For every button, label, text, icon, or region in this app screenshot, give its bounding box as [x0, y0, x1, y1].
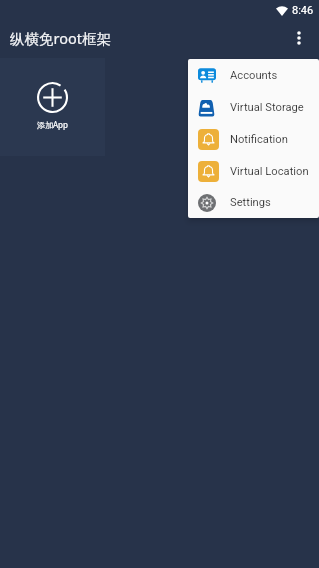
button[interactable]: Settings — [188, 187, 319, 218]
button[interactable]: Virtual Storage — [188, 91, 319, 123]
button[interactable]: More options — [279, 18, 319, 58]
staticText: 添加App — [37, 119, 68, 130]
button[interactable]: 添加App — [0, 58, 105, 156]
staticText: 8:46 — [292, 4, 314, 17]
staticText: Virtual Storage — [230, 101, 304, 114]
staticText: Virtual Location — [230, 165, 309, 178]
button[interactable]: Virtual Location — [188, 155, 319, 187]
button[interactable]: Accounts — [188, 59, 319, 91]
staticText: Accounts — [230, 69, 278, 82]
staticText: Notification — [230, 133, 288, 146]
staticText: 纵横免root框架 — [10, 28, 111, 48]
button[interactable]: Notification — [188, 123, 319, 155]
staticText: Settings — [230, 196, 271, 209]
